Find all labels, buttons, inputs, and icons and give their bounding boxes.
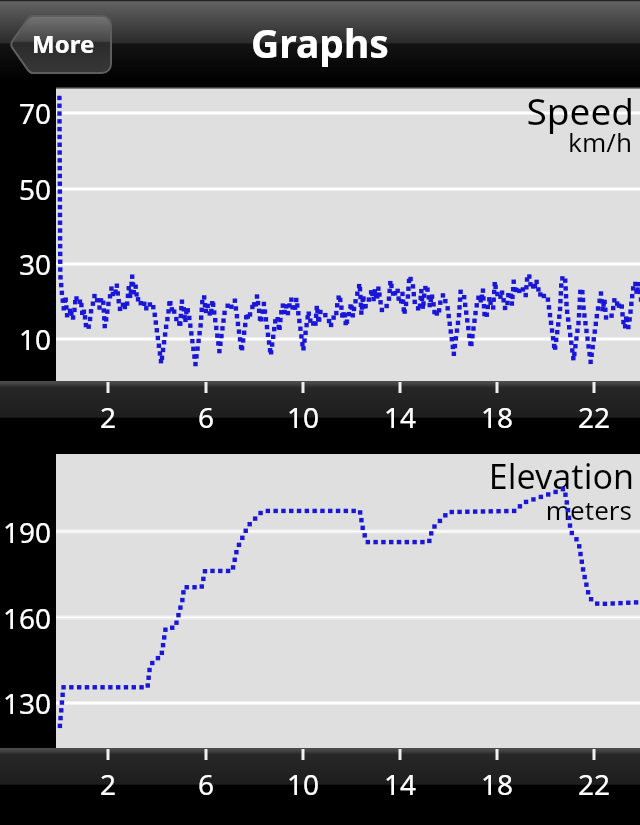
button[interactable]: More, go back bbox=[10, 16, 111, 73]
staticText: 22 bbox=[554, 398, 634, 436]
staticText: 10 bbox=[0, 320, 51, 358]
staticText: Graphs bbox=[251, 16, 389, 69]
staticText: 30 bbox=[0, 245, 51, 283]
button[interactable]: Speed graph, km/h bbox=[0, 87, 640, 381]
staticText: 14 bbox=[360, 398, 440, 436]
staticText: 70 bbox=[0, 94, 51, 132]
staticText: 22 bbox=[554, 765, 634, 803]
staticText: 50 bbox=[0, 170, 51, 208]
staticText: 10 bbox=[263, 765, 343, 803]
staticText: 2 bbox=[68, 765, 148, 803]
button[interactable]: Elevation graph, meters bbox=[0, 454, 640, 748]
staticText: 18 bbox=[457, 765, 537, 803]
staticText: 6 bbox=[166, 398, 246, 436]
staticText: 160 bbox=[0, 599, 51, 637]
staticText: More bbox=[32, 27, 95, 60]
staticText: 18 bbox=[457, 398, 537, 436]
staticText: 14 bbox=[360, 765, 440, 803]
staticText: 190 bbox=[0, 513, 51, 551]
staticText: meters bbox=[545, 492, 632, 527]
staticText: 10 bbox=[263, 398, 343, 436]
staticText: Elevation bbox=[488, 453, 634, 499]
staticText: 130 bbox=[0, 684, 51, 722]
staticText: km/h bbox=[568, 124, 632, 159]
staticText: 2 bbox=[68, 398, 148, 436]
staticText: Speed bbox=[526, 85, 634, 135]
staticText: 6 bbox=[166, 765, 246, 803]
